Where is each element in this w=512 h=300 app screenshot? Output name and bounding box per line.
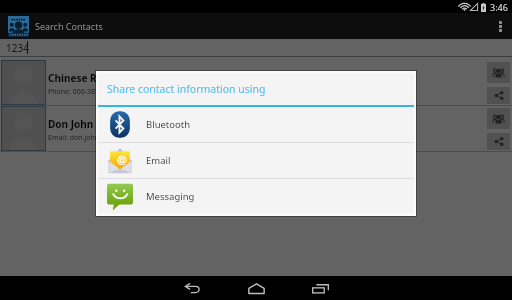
staticText: Share contact information using [107,82,266,96]
button[interactable]: Home [224,276,288,300]
button[interactable]: Share contact [487,87,510,104]
staticText: Email [146,154,171,167]
button[interactable]: View contact [487,62,510,83]
staticText: Email: don.john@gmail.com [48,133,140,143]
staticText: 3:46 [490,1,508,13]
staticText: Don John [48,117,94,131]
staticText: Search Contacts [35,20,103,32]
staticText: Bluetooth [146,118,191,131]
button[interactable]: Back [160,276,224,300]
button[interactable]: Bluetooth [98,107,414,142]
staticText: Phone: 000-3850000 [48,87,116,97]
staticText: 1234 [6,41,29,55]
button[interactable]: Messaging [98,179,414,214]
button[interactable]: Share contact [487,133,510,150]
button[interactable]: Don John [0,106,512,151]
staticText: @ [117,152,127,167]
button[interactable]: Chinese Re [0,60,512,105]
button[interactable]: More options [488,13,512,39]
button[interactable]: Recents [288,276,352,300]
button[interactable]: View contact [487,108,510,129]
button[interactable]: @ [98,143,414,178]
staticText: Messaging [146,190,195,203]
staticText: Chinese Re [48,71,103,85]
